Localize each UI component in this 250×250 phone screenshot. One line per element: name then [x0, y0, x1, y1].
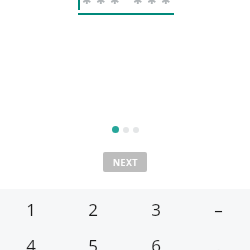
staticText: ✱ [161, 0, 170, 7]
button[interactable]: 1 [0, 198, 62, 220]
button[interactable]: 6 [124, 234, 187, 250]
staticText: NEXT [113, 156, 138, 168]
staticText: ✱ [110, 0, 119, 7]
button[interactable]: 3 [124, 198, 187, 220]
button[interactable]: NEXT [103, 152, 147, 172]
staticText: 4 [26, 234, 36, 250]
staticText: ✱ [147, 0, 156, 7]
button[interactable]: 2 [62, 198, 124, 220]
button[interactable]: – [187, 198, 250, 220]
staticText: 5 [88, 234, 98, 250]
staticText: ✱ [133, 0, 142, 7]
staticText: ✱ [82, 0, 91, 7]
staticText: 3 [151, 198, 161, 220]
staticText: 1 [26, 198, 36, 220]
button[interactable]: 5 [62, 234, 124, 250]
staticText: 6 [151, 234, 161, 250]
button[interactable]: 4 [0, 234, 62, 250]
button[interactable]: Password entry field [78, 0, 174, 15]
staticText: 2 [88, 198, 98, 220]
staticText: – [214, 198, 223, 220]
staticText: ✱ [96, 0, 105, 7]
